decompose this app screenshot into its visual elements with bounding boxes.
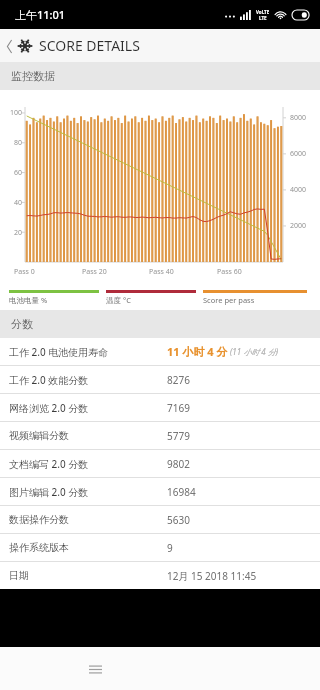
other: App logo [16,37,34,55]
staticText: 100 [2,108,22,118]
staticText: 40 [2,198,22,208]
button[interactable]: Menu [75,649,115,689]
staticText: 工作 2.0 效能分数 [9,373,167,387]
button[interactable]: 工作 2.0 电池使用寿命 [0,338,320,365]
staticText: Pass 0 [14,267,44,277]
staticText: 分数 [11,317,33,331]
staticText: 80 [2,138,22,148]
staticText: 网络浏览 2.0 分数 [9,401,167,415]
staticText: 9 [167,541,173,555]
staticText: SCORE DETAILS [39,36,140,55]
button[interactable]: 网络浏览 2.0 分数 [0,394,320,421]
staticText: 4000 [290,185,316,195]
button[interactable]: 图片编辑 2.0 分数 [0,478,320,505]
staticText: 8276 [167,373,190,387]
staticText: Pass 40 [149,267,179,277]
staticText: 8000 [290,113,316,123]
staticText: 60 [2,168,22,178]
staticText: 数据操作分数 [9,513,167,526]
staticText: 操作系统版本 [9,541,167,554]
button[interactable]: 日期 [0,562,320,589]
staticText: 工作 2.0 电池使用寿命 [9,345,167,359]
staticText: 图片编辑 2.0 分数 [9,485,167,499]
staticText: 12月 15 2018 11:45 [167,569,257,583]
staticText: 文档编写 2.0 分数 [9,457,167,471]
staticText: 7169 [167,401,190,415]
button[interactable]: 工作 2.0 效能分数 [0,366,320,393]
button[interactable]: 文档编写 2.0 分数 [0,450,320,477]
staticText: VoLTE [256,9,270,15]
staticText: (11 小时 4 分) [230,346,279,357]
staticText: 温度 °C [106,295,131,305]
staticText: 监控数据 [11,69,55,83]
staticText: Pass 20 [82,267,112,277]
staticText: 5779 [167,429,190,443]
staticText: 16984 [167,485,196,499]
staticText: Pass 60 [217,267,247,277]
staticText: 9802 [167,457,190,471]
staticText: 20 [2,228,22,238]
staticText: 2000 [290,221,316,231]
staticText: 5630 [167,513,190,527]
button[interactable]: 操作系统版本 [0,534,320,561]
button[interactable]: Back [2,32,16,60]
staticText: 电池电量 % [9,295,48,305]
button[interactable]: 数据操作分数 [0,506,320,533]
staticText: 日期 [9,569,167,582]
staticText: Score per pass [203,295,255,305]
staticText: 11 小时 4 分 [167,344,228,359]
staticText: LTE [259,15,267,21]
staticText: 上午11:01 [15,7,66,22]
staticText: 视频编辑分数 [9,429,167,442]
staticText: 6000 [290,149,316,159]
button[interactable]: 视频编辑分数 [0,422,320,449]
